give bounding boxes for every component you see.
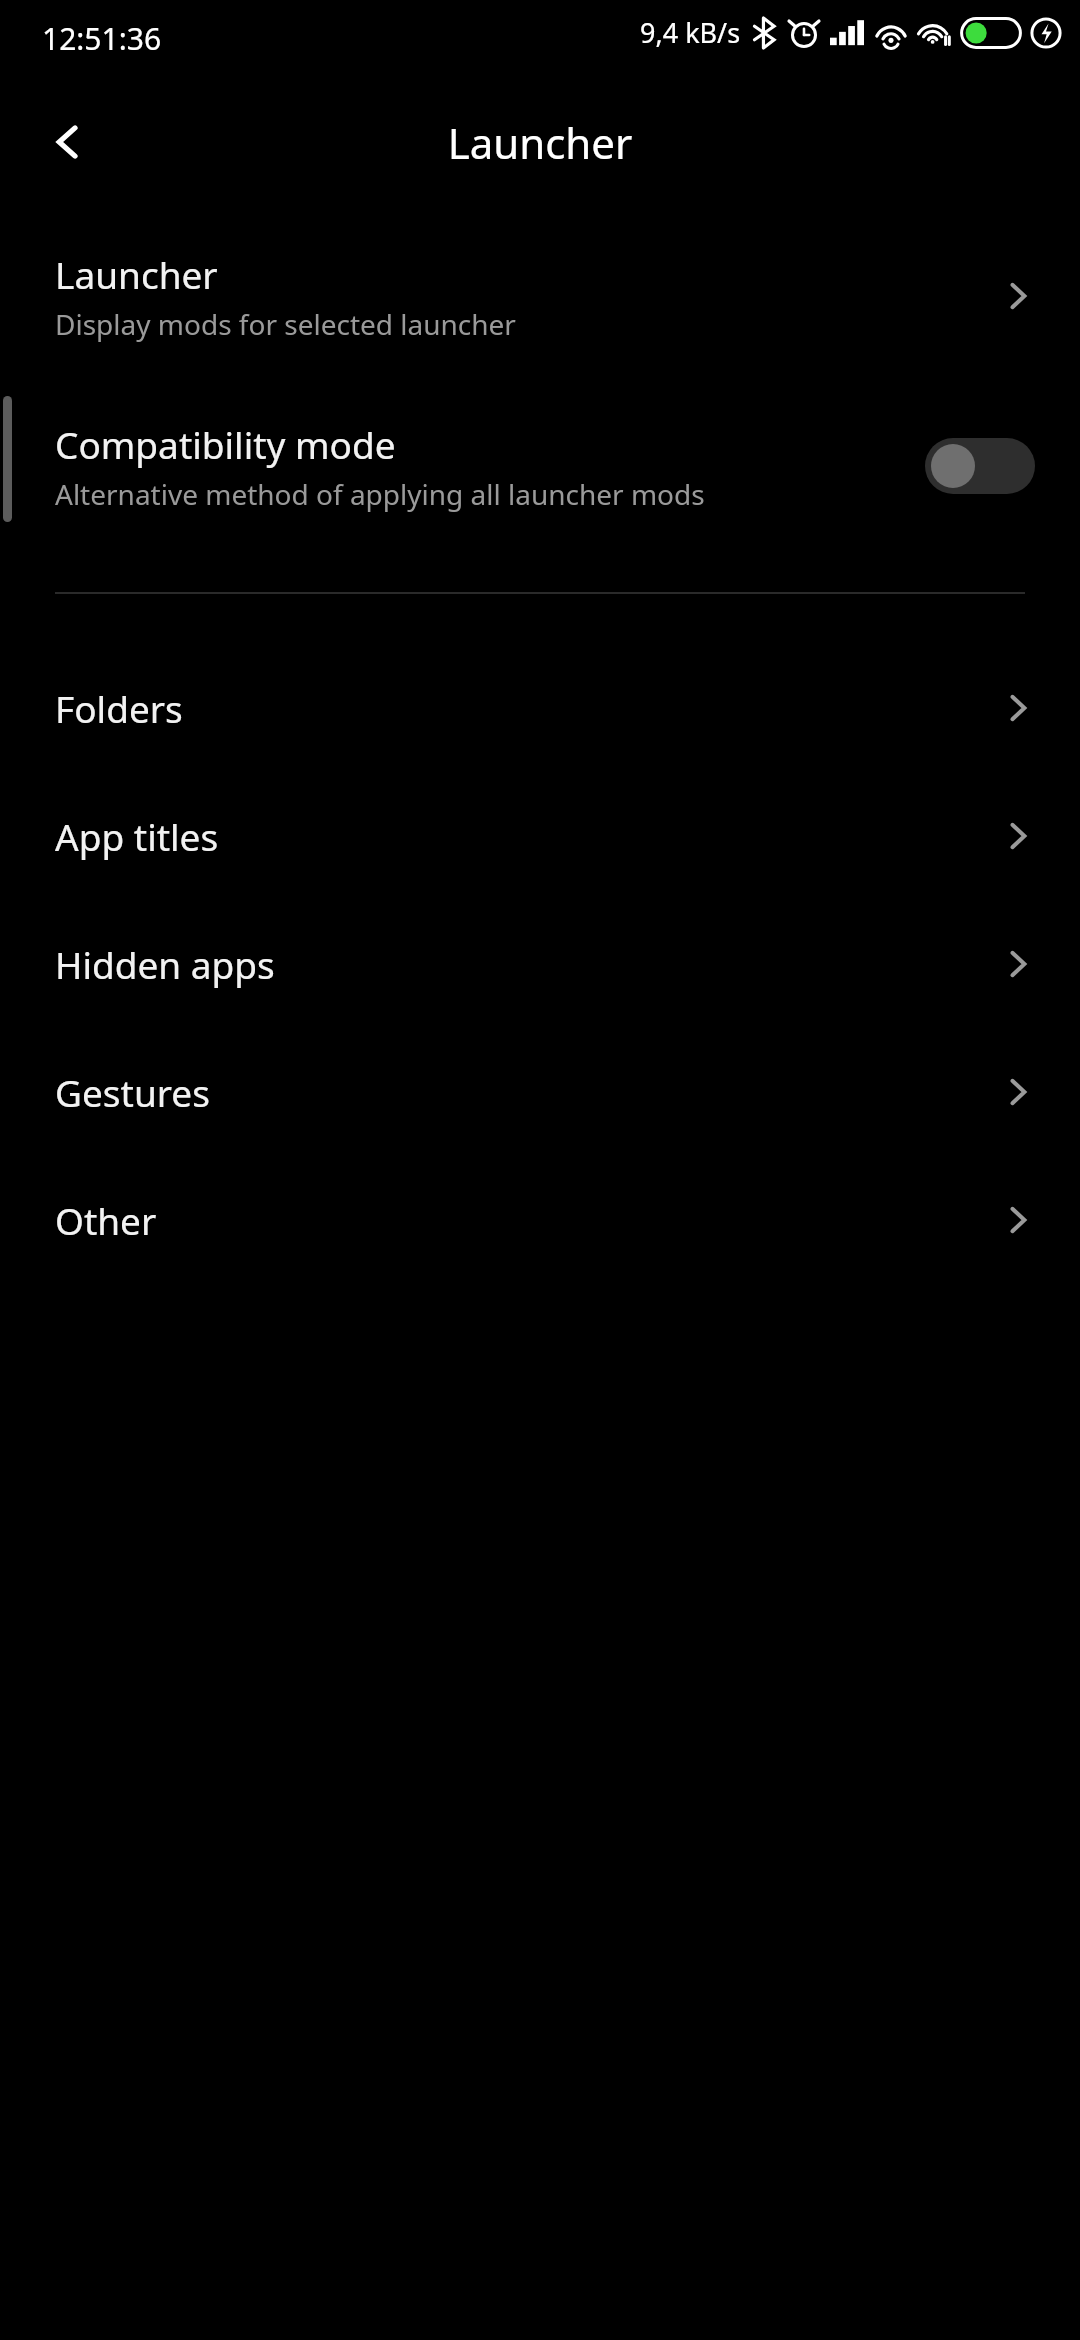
staticText: Display mods for selected launcher: [55, 305, 516, 343]
staticText: 12:51:36: [42, 18, 162, 59]
button[interactable]: Other: [0, 1176, 1080, 1264]
staticText: Compatibility mode: [55, 419, 396, 469]
staticText: Launcher: [0, 114, 1080, 171]
staticText: Folders: [55, 683, 998, 733]
button[interactable]: Compatibility mode toggle: [925, 438, 1035, 494]
staticText: App titles: [55, 811, 998, 861]
staticText: Gestures: [55, 1067, 998, 1117]
staticText: Launcher: [55, 249, 218, 299]
button[interactable]: Launcher: [0, 234, 1080, 358]
staticText: Alternative method of applying all launc…: [55, 475, 705, 513]
button[interactable]: App titles: [0, 792, 1080, 880]
button[interactable]: Back: [20, 94, 116, 190]
button[interactable]: Hidden apps: [0, 920, 1080, 1008]
staticText: Other: [55, 1195, 998, 1245]
button[interactable]: Compatibility mode: [0, 404, 1080, 528]
button[interactable]: Gestures: [0, 1048, 1080, 1136]
staticText: Hidden apps: [55, 939, 998, 989]
staticText: 9,4 kB/s: [640, 14, 741, 51]
button[interactable]: Folders: [0, 664, 1080, 752]
